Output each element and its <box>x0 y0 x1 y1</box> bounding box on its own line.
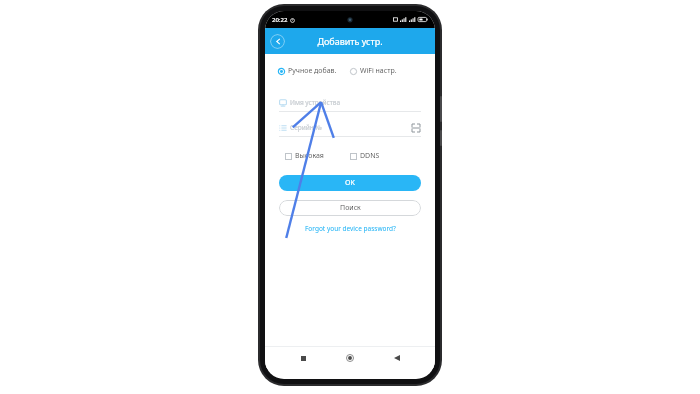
staticText: DDNS <box>360 151 380 161</box>
button[interactable]: Scan QR <box>410 122 421 133</box>
staticText: WiFi настр. <box>360 66 397 76</box>
button[interactable]: Ручное добав. <box>278 66 350 76</box>
button[interactable]: OK <box>279 175 421 191</box>
button[interactable]: Recents <box>294 349 312 367</box>
button[interactable]: DDNS <box>350 151 415 161</box>
staticText: Серийн.№ <box>290 123 323 132</box>
staticText: OK <box>345 178 355 188</box>
button[interactable]: Home <box>341 349 359 367</box>
staticText: Добавить устр. <box>317 35 383 47</box>
button[interactable]: Back <box>388 349 406 367</box>
button[interactable]: WiFi настр. <box>350 66 422 76</box>
staticText: Высокая <box>295 151 324 161</box>
button[interactable]: Forgot your device password? <box>305 224 396 233</box>
button[interactable]: Поиск <box>279 200 421 216</box>
button[interactable]: Имя устройства <box>279 96 421 112</box>
button[interactable]: Back <box>270 34 285 49</box>
staticText: Поиск <box>340 203 361 213</box>
button[interactable]: Серийн.№ <box>279 121 421 137</box>
staticText: Имя устройства <box>290 98 341 107</box>
staticText: 20:22 <box>272 16 288 24</box>
staticText: Ручное добав. <box>288 66 337 76</box>
button[interactable]: Высокая <box>285 151 350 161</box>
